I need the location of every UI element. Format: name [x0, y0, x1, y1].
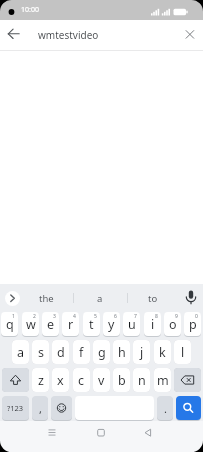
staticText: y — [108, 316, 115, 333]
button[interactable]: a — [12, 340, 29, 364]
staticText: 1 — [12, 313, 15, 320]
staticText: to — [148, 292, 158, 305]
staticText: s — [38, 344, 44, 361]
staticText: f — [79, 344, 84, 361]
staticText: b — [118, 372, 126, 389]
staticText: h — [118, 344, 126, 361]
staticText: u — [128, 316, 136, 333]
button[interactable]: s — [32, 340, 49, 364]
staticText: wmtestvideo — [38, 28, 99, 42]
button[interactable] — [181, 288, 201, 309]
button[interactable]: w — [22, 312, 39, 336]
staticText: 8 — [155, 313, 158, 320]
button[interactable]: r — [62, 312, 79, 336]
button[interactable]: q — [1, 312, 18, 336]
button[interactable]: to — [128, 289, 178, 308]
staticText: e — [47, 316, 55, 333]
staticText: o — [169, 316, 177, 333]
staticText: p — [189, 316, 197, 333]
button[interactable] — [128, 421, 168, 452]
button[interactable] — [2, 368, 29, 392]
button[interactable]: e — [42, 312, 59, 336]
staticText: 9 — [175, 313, 178, 320]
staticText: , — [39, 401, 42, 416]
button[interactable]: m — [154, 368, 171, 392]
button[interactable]: k — [154, 340, 171, 364]
staticText: 3 — [53, 313, 56, 320]
staticText: m — [157, 372, 169, 389]
button[interactable]: v — [93, 368, 110, 392]
button[interactable]: z — [32, 368, 49, 392]
staticText: k — [159, 344, 166, 361]
staticText: r — [68, 316, 74, 333]
button[interactable]: x — [52, 368, 69, 392]
button[interactable] — [32, 421, 72, 452]
staticText: i — [151, 316, 155, 333]
button[interactable]: p — [184, 312, 201, 336]
button[interactable] — [5, 291, 20, 306]
button[interactable]: j — [133, 340, 150, 364]
staticText: 6 — [114, 313, 117, 320]
button[interactable]: u — [123, 312, 140, 336]
button[interactable]: the — [21, 289, 71, 308]
staticText: v — [98, 372, 105, 389]
staticText: z — [38, 372, 44, 389]
button[interactable]: , — [32, 396, 48, 420]
button[interactable]: ?123 — [2, 396, 29, 420]
button[interactable] — [174, 368, 201, 392]
staticText: j — [140, 344, 144, 361]
staticText: ?123 — [7, 403, 24, 413]
button[interactable]: o — [164, 312, 181, 336]
staticText: 7 — [134, 313, 137, 320]
button[interactable] — [175, 20, 203, 50]
staticText: 0 — [195, 313, 198, 320]
button[interactable]: a — [75, 289, 125, 308]
staticText: n — [138, 372, 146, 389]
button[interactable]: d — [52, 340, 69, 364]
staticText: d — [57, 344, 65, 361]
staticText: l — [181, 344, 185, 361]
button[interactable]: l — [174, 340, 191, 364]
button[interactable] — [0, 20, 30, 50]
staticText: q — [6, 316, 14, 333]
staticText: a — [97, 292, 103, 305]
staticText: 5 — [94, 313, 97, 320]
staticText: g — [98, 344, 106, 361]
button[interactable]: c — [73, 368, 90, 392]
button[interactable]: i — [144, 312, 161, 336]
button[interactable] — [81, 421, 121, 452]
staticText: a — [17, 344, 25, 361]
staticText: c — [78, 372, 85, 389]
staticText: 10:00 — [21, 5, 39, 15]
staticText: t — [89, 316, 94, 333]
staticText: . — [164, 401, 167, 416]
button[interactable]: g — [93, 340, 110, 364]
button[interactable]: f — [73, 340, 90, 364]
button[interactable]: t — [83, 312, 100, 336]
button[interactable]: n — [133, 368, 150, 392]
button[interactable] — [176, 396, 201, 420]
button[interactable]: . — [157, 396, 173, 420]
staticText: x — [57, 372, 64, 389]
button[interactable]: y — [103, 312, 120, 336]
staticText: 2 — [33, 313, 36, 320]
button[interactable]: b — [113, 368, 130, 392]
button[interactable]: h — [113, 340, 130, 364]
staticText: the — [39, 292, 54, 305]
staticText: 4 — [73, 313, 76, 320]
button[interactable] — [51, 396, 72, 420]
staticText: w — [26, 316, 36, 333]
